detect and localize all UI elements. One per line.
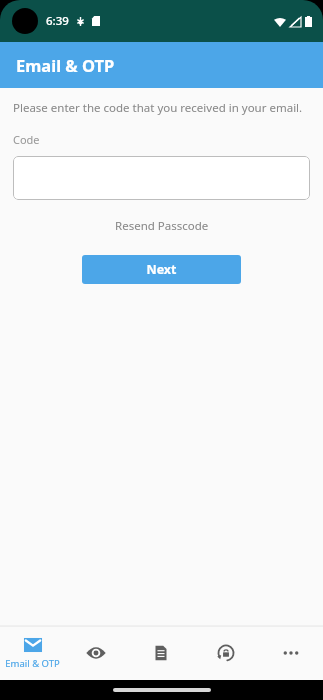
button[interactable]: Resend Passcode [103, 214, 221, 238]
button[interactable] [13, 156, 310, 200]
button[interactable]: More options [258, 626, 323, 680]
button[interactable]: Email & OTP [0, 42, 323, 88]
button[interactable]: Email & OTP [0, 626, 64, 680]
button[interactable]: Document [128, 626, 193, 680]
staticText: Code [13, 132, 40, 147]
button[interactable]: Visibility [64, 626, 128, 680]
staticText: 6:39 [46, 13, 69, 29]
button[interactable]: Next [82, 255, 241, 284]
staticText: Email & OTP [5, 657, 60, 670]
button[interactable]: Reset password [193, 626, 258, 680]
staticText: Next [146, 261, 177, 278]
staticText: Email & OTP [16, 54, 115, 76]
staticText: Please enter the code that you received … [13, 100, 303, 116]
